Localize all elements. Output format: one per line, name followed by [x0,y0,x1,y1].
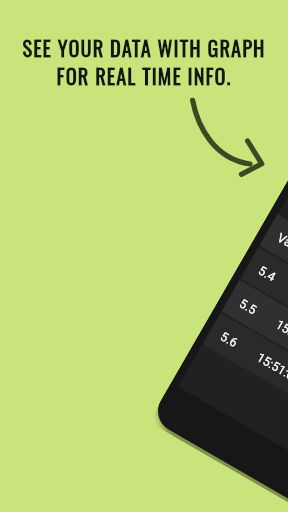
staticText: SEE YOUR DATA WITH GRAPH FOR REAL TIME I… [22,33,266,91]
staticText: 15:51:02 [254,349,288,387]
staticText: 5.4 [256,263,279,285]
staticText: Value [275,230,288,259]
staticText: 5.5 [237,296,260,318]
staticText: 15:50:58 [273,317,288,354]
staticText: 5.6 [218,328,241,350]
